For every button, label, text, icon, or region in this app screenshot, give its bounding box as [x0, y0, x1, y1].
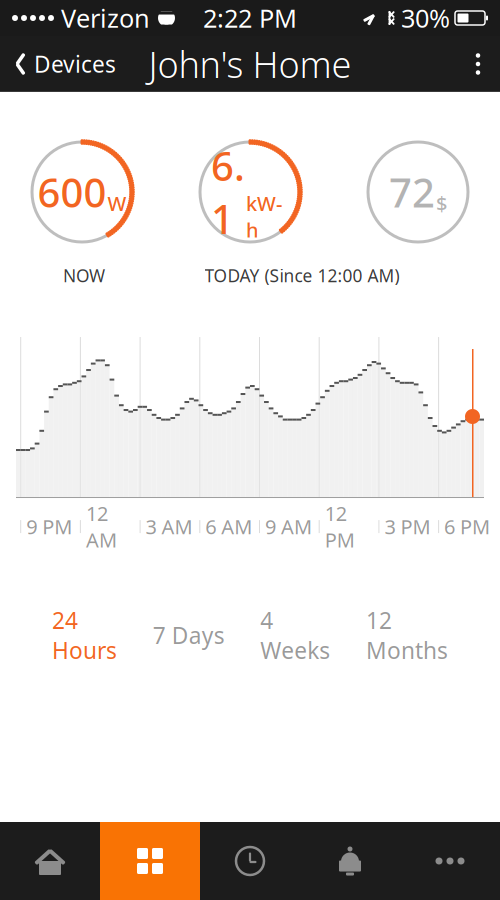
staticText: John's Home: [148, 40, 351, 88]
button[interactable]: 600: [32, 142, 132, 242]
staticText: 2:22 PM: [203, 1, 297, 35]
staticText: 12 AM: [86, 500, 117, 553]
staticText: NOW: [63, 264, 105, 287]
staticText: 3 AM: [146, 513, 193, 540]
staticText: 12 PM: [325, 500, 355, 553]
button[interactable]: Dashboard: [100, 822, 200, 900]
button[interactable]: 24 Hours: [38, 595, 131, 675]
staticText: 9 AM: [265, 513, 312, 540]
button[interactable]: 7 Days: [139, 610, 239, 660]
staticText: Verizon: [61, 1, 150, 35]
button[interactable]: 4 Weeks: [246, 595, 344, 675]
button[interactable]: Alerts: [300, 822, 400, 900]
staticText: 9 PM: [26, 513, 72, 540]
staticText: W: [107, 190, 126, 217]
button[interactable]: 6.1: [200, 142, 300, 242]
button[interactable]: More: [400, 822, 500, 900]
staticText: 4 Weeks: [260, 605, 330, 665]
button[interactable]: Home: [0, 822, 100, 900]
staticText: 6 PM: [444, 513, 490, 540]
staticText: 3 PM: [384, 513, 430, 540]
button[interactable]: 72: [368, 142, 468, 242]
staticText: 30%: [401, 1, 450, 35]
button[interactable]: 12 Months: [352, 595, 462, 675]
button[interactable]: History: [200, 822, 300, 900]
staticText: TODAY (Since 12:00 AM): [204, 264, 399, 287]
staticText: 12 Months: [366, 605, 448, 665]
staticText: 24 Hours: [52, 605, 117, 665]
staticText: 72: [389, 165, 435, 218]
button[interactable]: Devices: [0, 36, 130, 92]
staticText: 600: [37, 165, 106, 218]
staticText: 6 AM: [205, 513, 252, 540]
staticText: 6.1: [211, 139, 245, 245]
staticText: $: [436, 190, 447, 217]
staticText: kWh: [246, 190, 282, 243]
button[interactable]: More options: [456, 36, 500, 92]
staticText: Devices: [34, 49, 116, 79]
staticText: 7 Days: [153, 620, 225, 650]
